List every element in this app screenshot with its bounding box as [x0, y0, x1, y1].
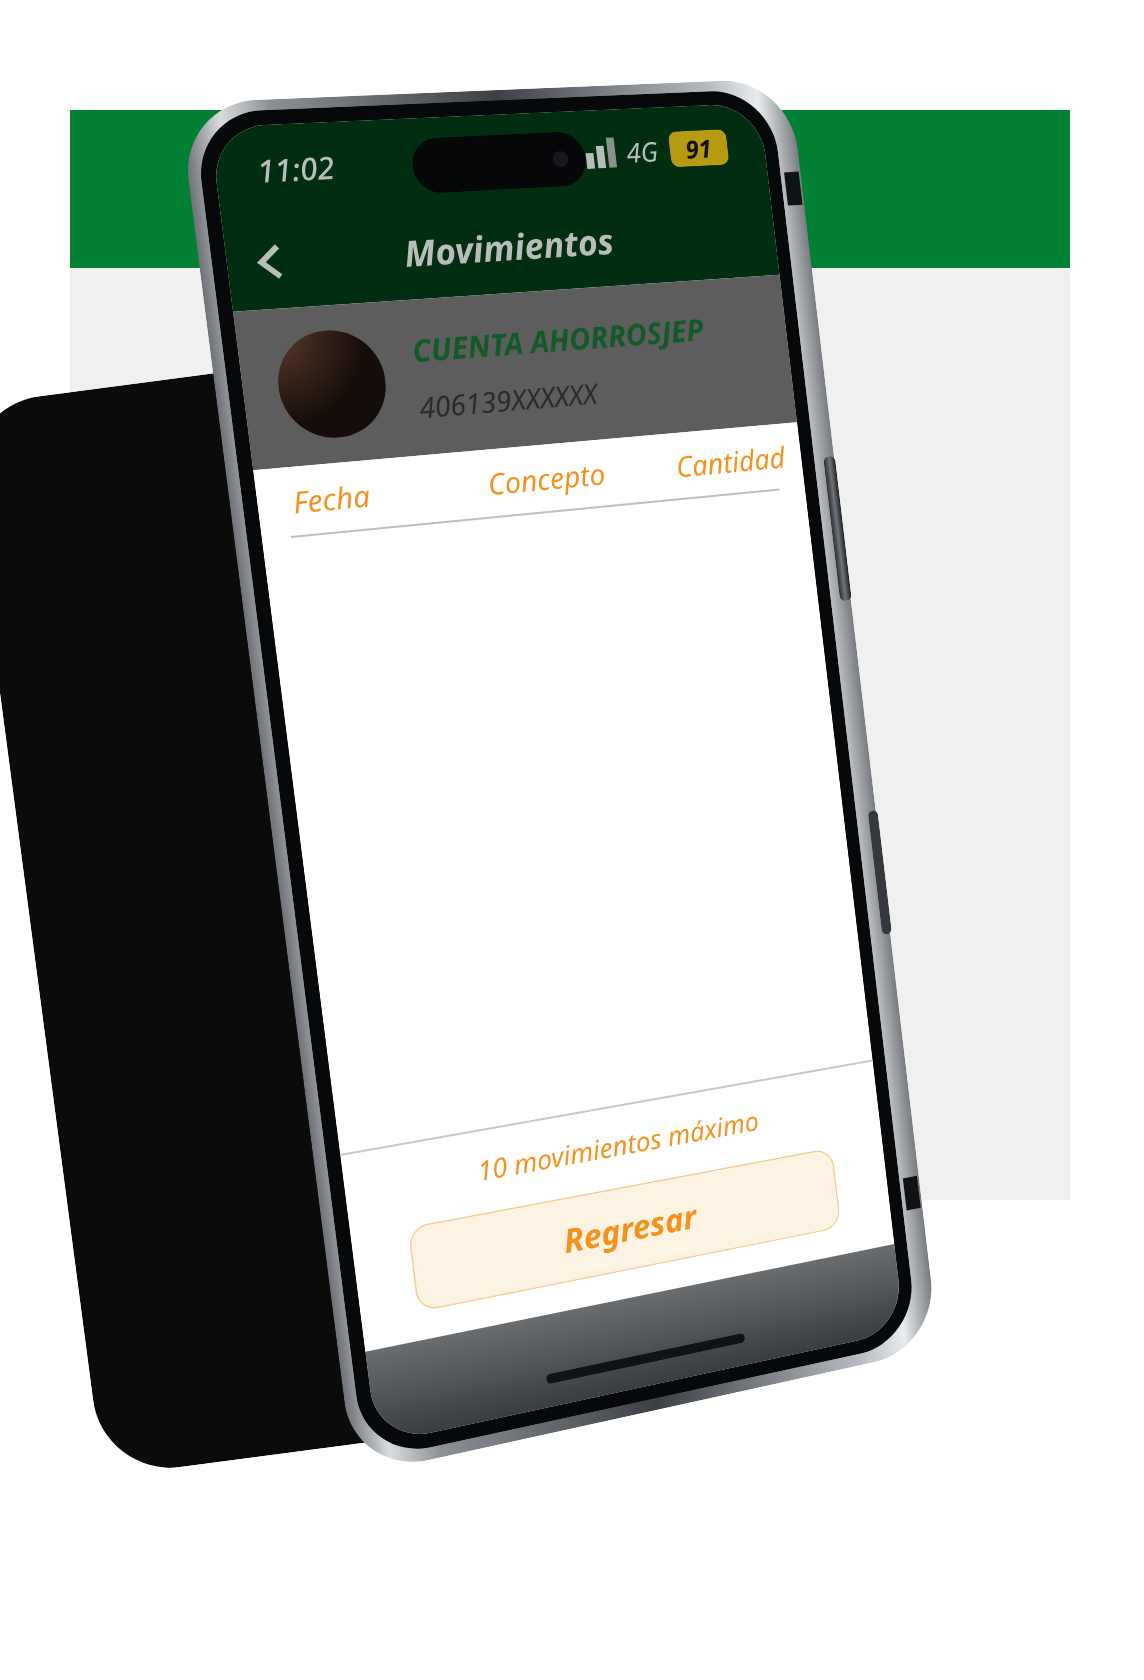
staticText: CUENTA AHORROSJEP [410, 309, 706, 371]
staticText: Fecha [290, 467, 461, 522]
staticText: 4G [624, 132, 661, 171]
staticText: Cantidad [631, 437, 787, 489]
button[interactable]: Back [221, 216, 320, 309]
button[interactable]: Regresar [408, 1148, 841, 1312]
staticText: Movimientos [401, 217, 617, 278]
staticText: 406139XXXXXX [417, 374, 600, 426]
staticText: Concepto [456, 451, 635, 506]
staticText: 11:02 [255, 146, 338, 192]
staticText: 91 [684, 131, 714, 166]
staticText: Regresar [561, 1193, 699, 1263]
staticText: 10 movimientos máximo [343, 1080, 879, 1214]
